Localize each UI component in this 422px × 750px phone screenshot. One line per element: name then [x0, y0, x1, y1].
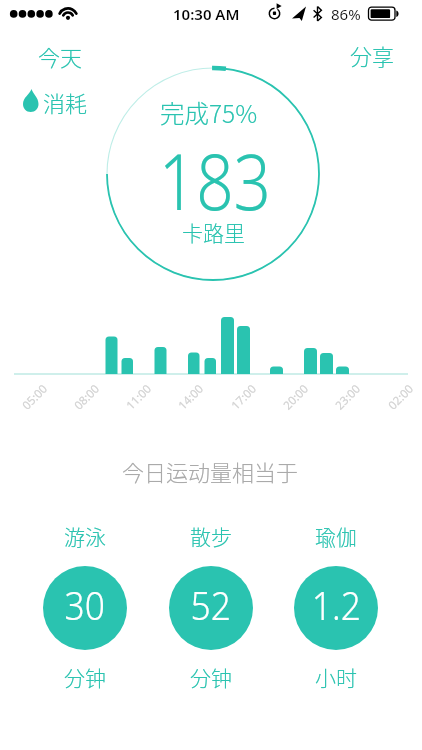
staticText: 分享	[350, 39, 395, 71]
staticText: 瑜伽	[315, 521, 357, 551]
staticText: 10:30 AM	[173, 4, 240, 24]
staticText: 卡路里	[182, 217, 245, 247]
staticText: 02:00	[385, 381, 417, 413]
staticText: 游泳	[64, 521, 106, 551]
staticText: 完成75%	[160, 95, 258, 130]
staticText: 14:00	[175, 381, 207, 413]
staticText: 散步	[190, 521, 232, 551]
staticText: 今天	[38, 40, 83, 72]
staticText: 消耗	[43, 86, 88, 118]
staticText: 30	[64, 579, 105, 631]
staticText: 17:00	[228, 381, 260, 413]
staticText: 小时	[315, 662, 357, 692]
staticText: 86%	[331, 4, 361, 24]
staticText: 08:00	[71, 381, 103, 413]
staticText: 20:00	[280, 381, 312, 413]
staticText: 23:00	[332, 381, 364, 413]
staticText: 1.2	[312, 579, 361, 631]
staticText: 11:00	[123, 381, 155, 413]
staticText: 05:00	[19, 381, 51, 413]
staticText: 今日运动量相当于	[122, 455, 299, 487]
staticText: 分钟	[190, 662, 232, 692]
staticText: 分钟	[64, 662, 106, 692]
staticText: 52	[190, 579, 231, 631]
staticText: 183	[159, 127, 271, 227]
